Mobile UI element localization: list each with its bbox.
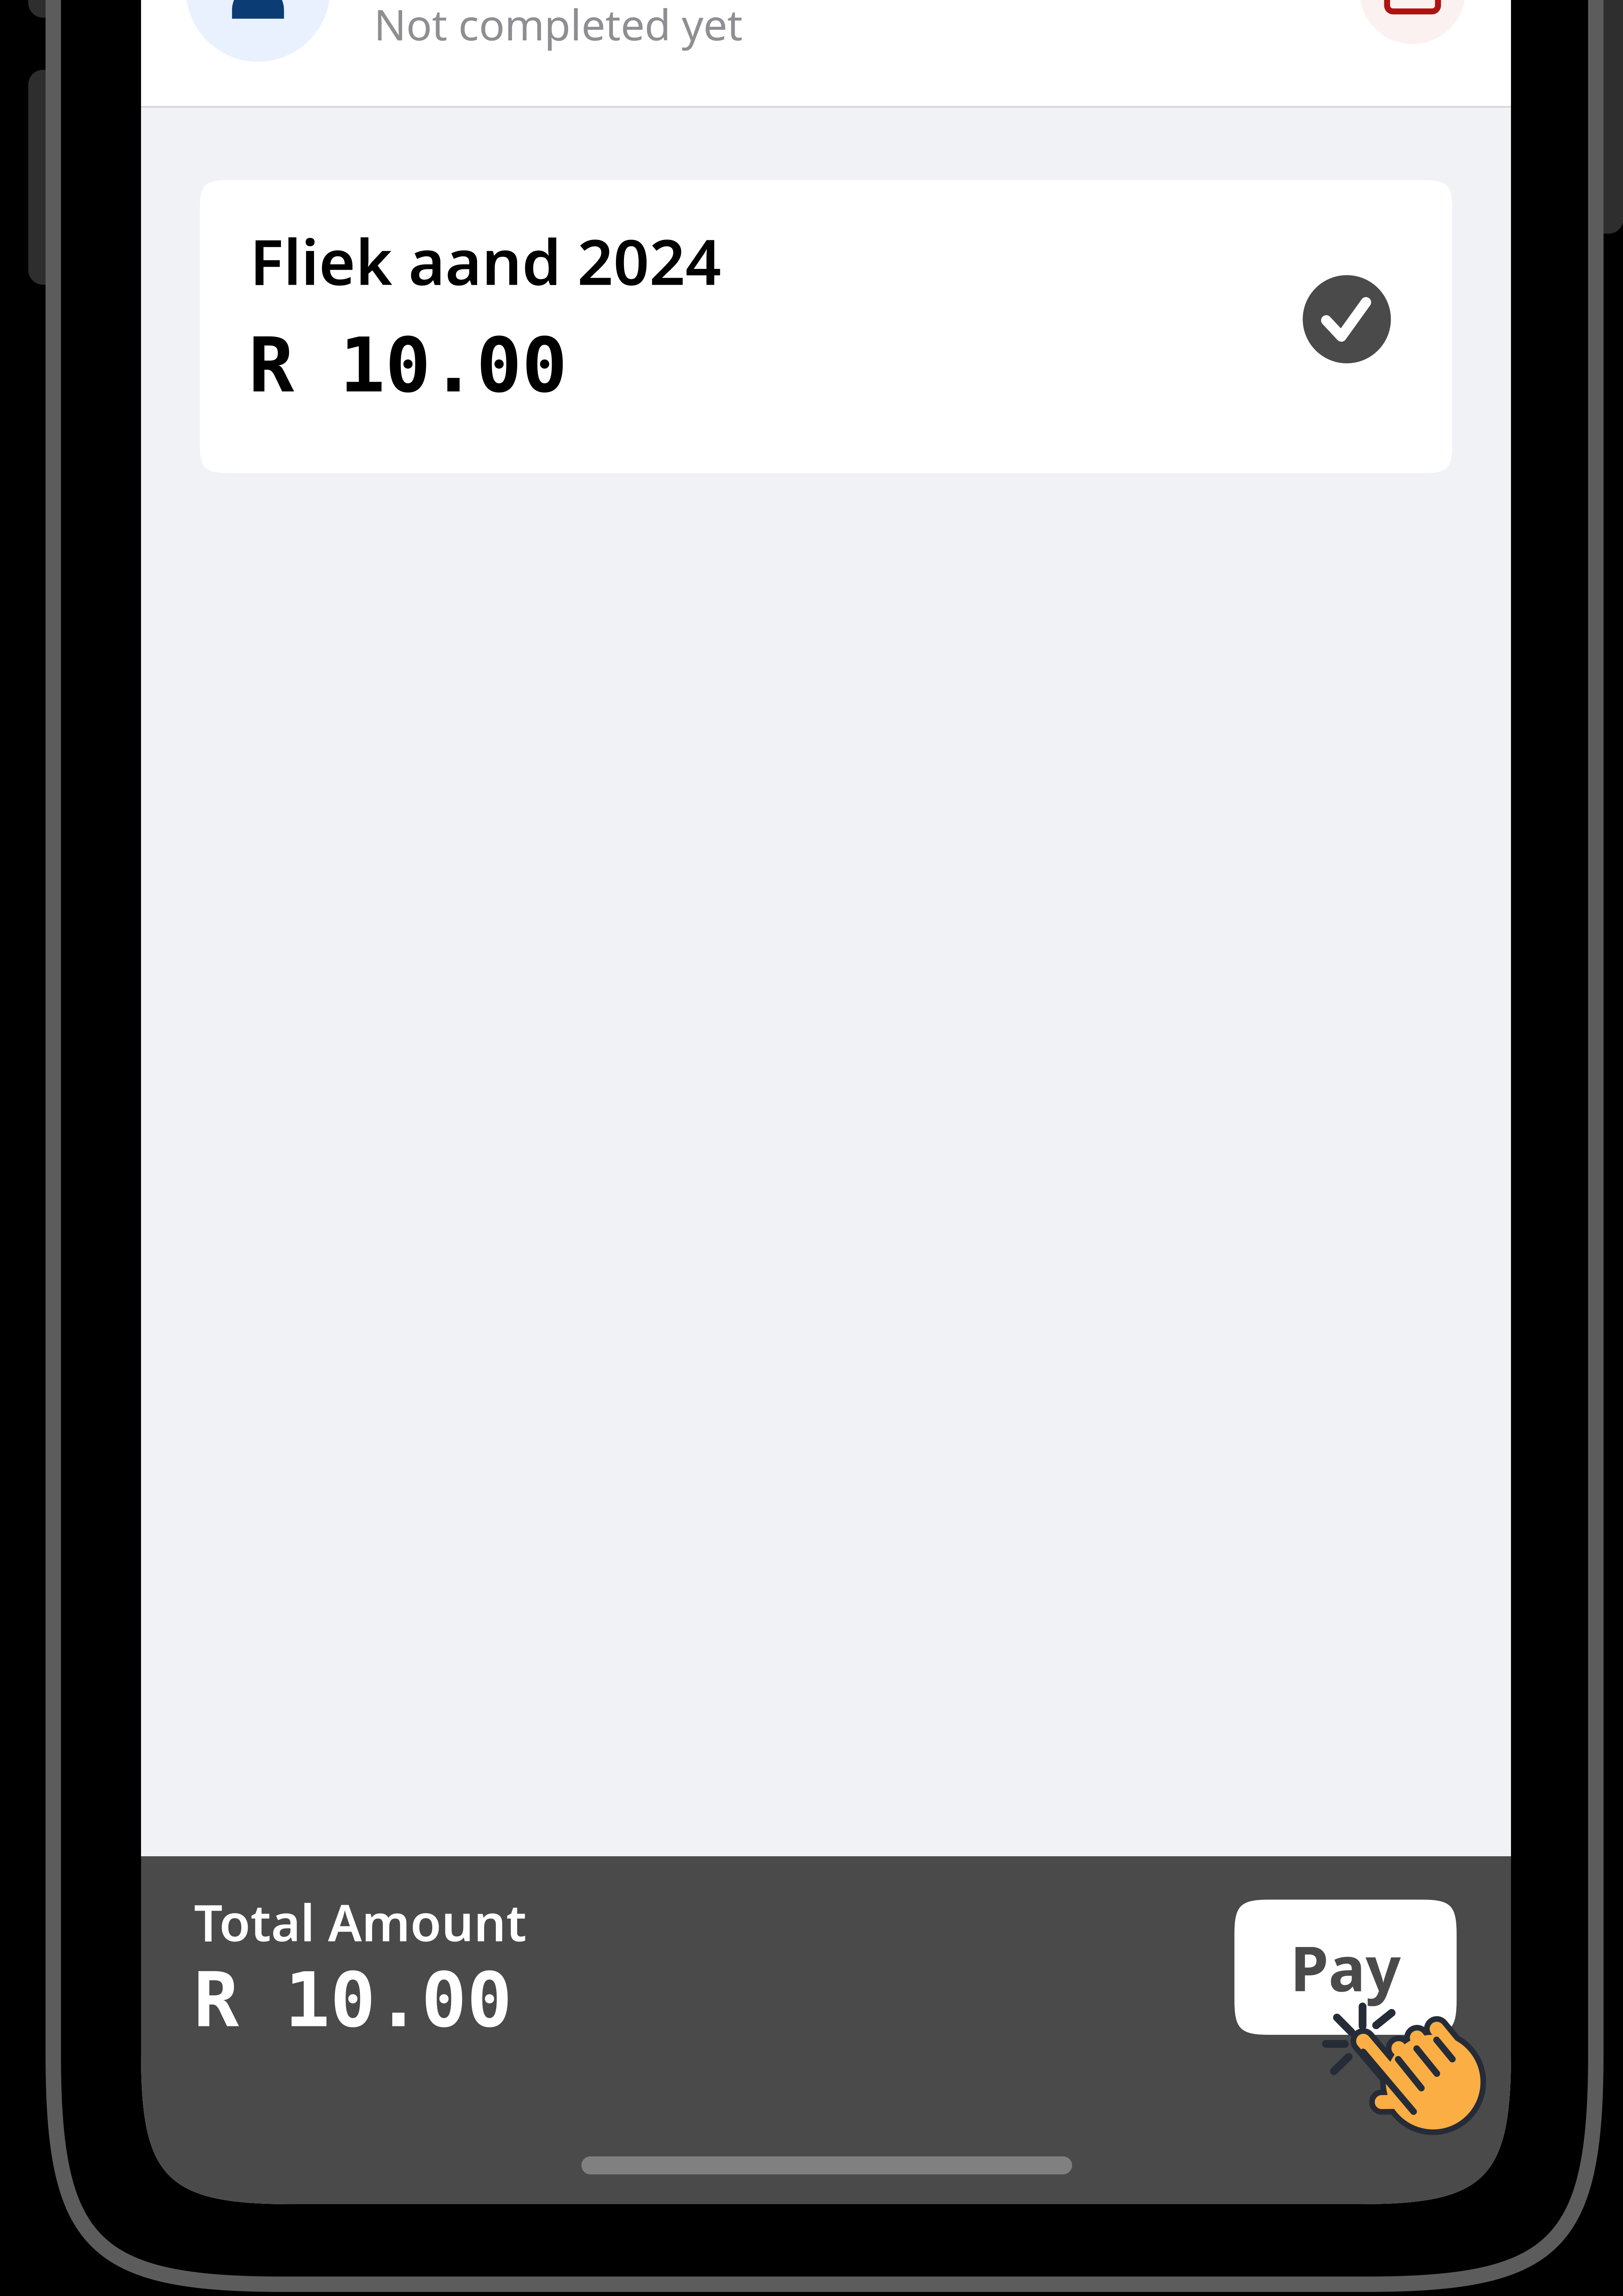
staticText: Total Amount — [194, 1888, 527, 1955]
button[interactable]: Not completed yet — [141, 0, 1511, 106]
staticText: R 10.00 — [249, 321, 567, 409]
staticText: R 10.00 — [194, 1956, 512, 2044]
staticText: Not completed yet — [374, 0, 743, 52]
staticText: Pay — [1290, 1926, 1401, 2008]
button[interactable]: Fliek aand 2024 — [200, 180, 1452, 473]
button[interactable]: Mark as paid — [1303, 275, 1391, 363]
button[interactable]: Delete participant — [1360, 0, 1465, 44]
staticText: Fliek aand 2024 — [250, 219, 721, 302]
button[interactable]: Pay — [1234, 1900, 1457, 2035]
